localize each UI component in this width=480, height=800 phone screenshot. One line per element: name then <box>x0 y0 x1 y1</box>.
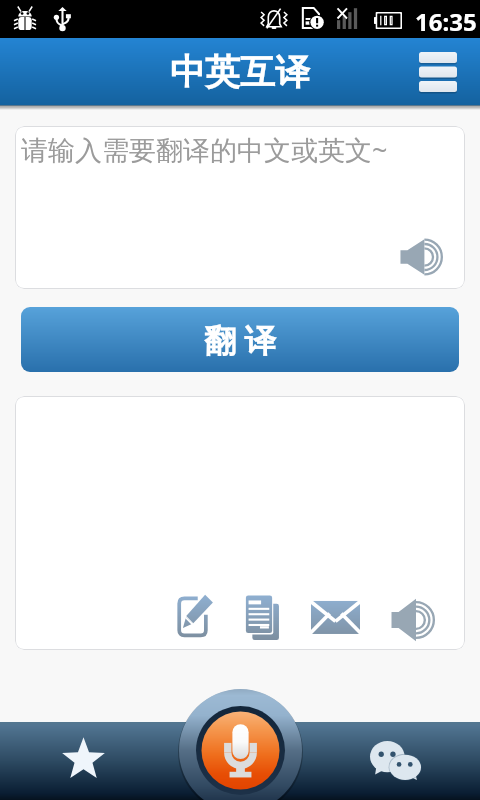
staticText: 中英互译 <box>170 50 310 94</box>
button[interactable]: Mail <box>305 591 366 647</box>
button[interactable]: Speak <box>384 589 439 650</box>
button[interactable]: 请输入需要翻译的中文或英文~ <box>15 126 465 289</box>
button[interactable]: 翻 译 <box>21 307 459 372</box>
button[interactable]: Menu <box>412 46 464 98</box>
button[interactable]: Edit <box>171 588 220 644</box>
staticText: 请输入需要翻译的中文或英文~ <box>21 131 388 168</box>
button[interactable]: WeChat <box>355 722 436 800</box>
button[interactable]: Speak <box>396 233 444 281</box>
staticText: 16:35 <box>415 5 477 38</box>
button[interactable]: Favorites <box>43 722 124 800</box>
staticText: 翻 译 <box>204 318 277 362</box>
button[interactable]: Copy <box>238 588 288 646</box>
button[interactable]: Voice input <box>178 688 303 800</box>
